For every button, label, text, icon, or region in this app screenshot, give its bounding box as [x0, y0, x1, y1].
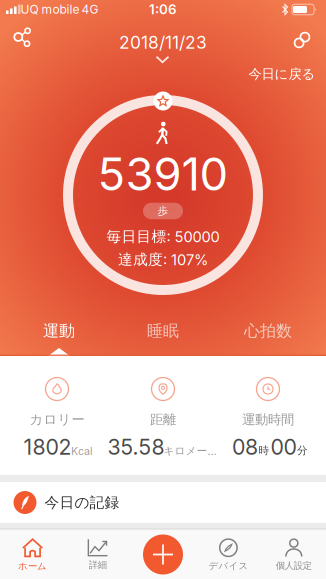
button[interactable]: 運動 — [43, 321, 75, 341]
staticText: 1802 — [23, 434, 71, 460]
staticText: 運動時間 — [242, 411, 294, 428]
button[interactable]: デバイス — [197, 533, 259, 577]
staticText: 歩 — [157, 204, 168, 217]
staticText: 睡眠 — [147, 321, 179, 341]
staticText: 今日の記録 — [44, 493, 119, 511]
button[interactable]: Link — [293, 31, 311, 49]
staticText: 35.58 — [107, 434, 164, 460]
staticText: カロリー — [29, 411, 84, 428]
staticText: 詳細 — [89, 559, 107, 571]
staticText: 08 — [232, 434, 258, 460]
staticText: 時 — [258, 444, 269, 457]
button[interactable]: Select date — [119, 32, 207, 64]
staticText: 達成度: 107% — [118, 250, 208, 268]
staticText: 53910 — [97, 147, 228, 201]
staticText: 毎日目標: 50000 — [106, 227, 219, 245]
button[interactable]: ホーム — [2, 533, 64, 577]
staticText: ホーム — [18, 560, 47, 572]
button[interactable]: 今日の記録 — [0, 482, 326, 523]
staticText: 4G — [81, 2, 98, 17]
button[interactable]: 個人設定 — [263, 533, 325, 577]
button[interactable]: 今日に戻る — [248, 66, 315, 82]
staticText: デバイス — [208, 560, 248, 572]
staticText: UQ mobile — [20, 2, 79, 17]
button[interactable]: Add record — [143, 534, 183, 574]
staticText: キロメー… — [163, 444, 216, 457]
button[interactable]: Share — [11, 28, 31, 47]
staticText: 00 — [270, 434, 296, 460]
staticText: 運動 — [43, 321, 75, 341]
staticText: 2018/11/23 — [119, 32, 207, 53]
staticText: 個人設定 — [276, 560, 312, 571]
button[interactable]: 心拍数 — [244, 321, 292, 341]
staticText: 今日に戻る — [248, 66, 315, 82]
staticText: Kcal — [71, 445, 93, 457]
staticText: 1:06 — [149, 2, 177, 17]
staticText: 心拍数 — [244, 321, 292, 341]
button[interactable]: 睡眠 — [147, 321, 179, 341]
staticText: 分 — [297, 444, 308, 457]
staticText: 距離 — [150, 411, 176, 428]
button[interactable]: 詳細 — [67, 533, 129, 577]
